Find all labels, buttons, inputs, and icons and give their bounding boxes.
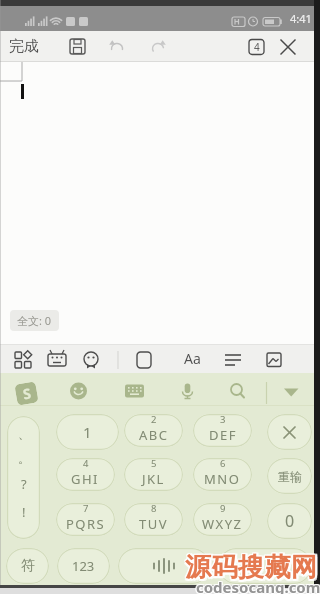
staticText: 9 [220, 503, 226, 515]
button[interactable]: Aa [181, 344, 203, 373]
button[interactable]: 、 [7, 416, 40, 539]
button[interactable] [279, 38, 297, 56]
button[interactable]: 7 [56, 503, 115, 536]
button[interactable]: 重输 [267, 458, 312, 494]
staticText: ! [22, 503, 26, 521]
staticText: MNO [204, 470, 241, 488]
staticText: 7 [83, 503, 89, 515]
button[interactable] [149, 38, 167, 56]
staticText: 源码搜藏网 [184, 550, 317, 583]
staticText: DEF [209, 426, 237, 444]
button[interactable]: 4 [56, 458, 115, 491]
button[interactable] [43, 344, 71, 373]
staticText: JKL [142, 470, 165, 488]
staticText: 源码搜藏网 [185, 553, 318, 586]
staticText: 4:41 [290, 11, 312, 26]
button[interactable] [69, 38, 87, 56]
staticText: 完成 [9, 37, 39, 56]
button[interactable]: 符 [6, 548, 49, 584]
staticText: 符 [21, 557, 35, 575]
button[interactable] [222, 373, 252, 406]
button[interactable] [108, 38, 126, 56]
button[interactable]: 0 [267, 503, 312, 539]
staticText: 源码搜藏网 [184, 551, 317, 584]
button[interactable] [172, 373, 202, 406]
button[interactable] [118, 548, 210, 584]
staticText: WXYZ [202, 515, 243, 533]
button[interactable]: S [14, 381, 39, 406]
staticText: 全文: 0 [17, 313, 52, 328]
staticText: 源码搜藏网 [187, 553, 320, 586]
staticText: codesocang.com [196, 578, 320, 594]
staticText: 1 [83, 422, 92, 442]
staticText: codesocang.com [195, 578, 320, 594]
staticText: 0 [285, 510, 295, 532]
staticText: 。 [18, 451, 30, 466]
staticText: S [21, 383, 33, 403]
button[interactable] [77, 344, 105, 373]
staticText: codesocang.com [196, 576, 320, 594]
staticText: 源码搜藏网 [187, 550, 320, 583]
staticText: 4 [83, 458, 89, 470]
button[interactable] [276, 373, 306, 406]
button[interactable]: 3 [193, 414, 252, 447]
staticText: codesocang.com [197, 576, 320, 594]
button[interactable] [218, 548, 312, 584]
button[interactable]: 全文: 0 [10, 310, 59, 331]
button[interactable]: 完成 [9, 37, 39, 56]
button[interactable]: 9 [193, 503, 252, 536]
button[interactable] [260, 344, 288, 373]
staticText: codesocang.com [196, 577, 320, 594]
button[interactable] [219, 344, 247, 373]
staticText: 5 [151, 458, 157, 470]
staticText: PQRS [66, 515, 106, 533]
staticText: 源码搜藏网 [187, 551, 320, 584]
staticText: GHI [71, 470, 100, 488]
staticText: codesocang.com [195, 576, 320, 594]
button[interactable] [267, 414, 312, 450]
button[interactable]: 2 [124, 414, 183, 447]
button[interactable]: 4 [248, 39, 265, 55]
staticText: 源码搜藏网 [185, 550, 318, 583]
staticText: 123 [72, 557, 95, 575]
button[interactable]: 123 [57, 548, 110, 584]
button[interactable]: 1 [56, 414, 119, 450]
staticText: Aa [184, 349, 201, 368]
staticText: codesocang.com [197, 577, 320, 594]
button[interactable] [130, 344, 158, 373]
staticText: codesocang.com [197, 578, 320, 594]
button[interactable] [8, 344, 36, 373]
staticText: 6 [220, 458, 226, 470]
staticText: 8 [151, 503, 157, 515]
staticText: 4 [254, 40, 260, 54]
staticText: 3 [220, 414, 226, 426]
staticText: 源码搜藏网 [185, 551, 318, 584]
button[interactable] [119, 373, 149, 406]
staticText: 重输 [278, 469, 302, 484]
button[interactable]: 6 [193, 458, 252, 491]
button[interactable] [63, 373, 93, 406]
staticText: ? [21, 475, 27, 493]
staticText: ABC [139, 426, 169, 444]
button[interactable]: 8 [124, 503, 183, 536]
staticText: TUV [139, 515, 169, 533]
button[interactable]: 5 [124, 458, 183, 491]
staticText: 、 [18, 426, 30, 441]
staticText: codesocang.com [195, 577, 320, 594]
staticText: 2 [151, 414, 157, 426]
staticText: 源码搜藏网 [184, 553, 317, 586]
